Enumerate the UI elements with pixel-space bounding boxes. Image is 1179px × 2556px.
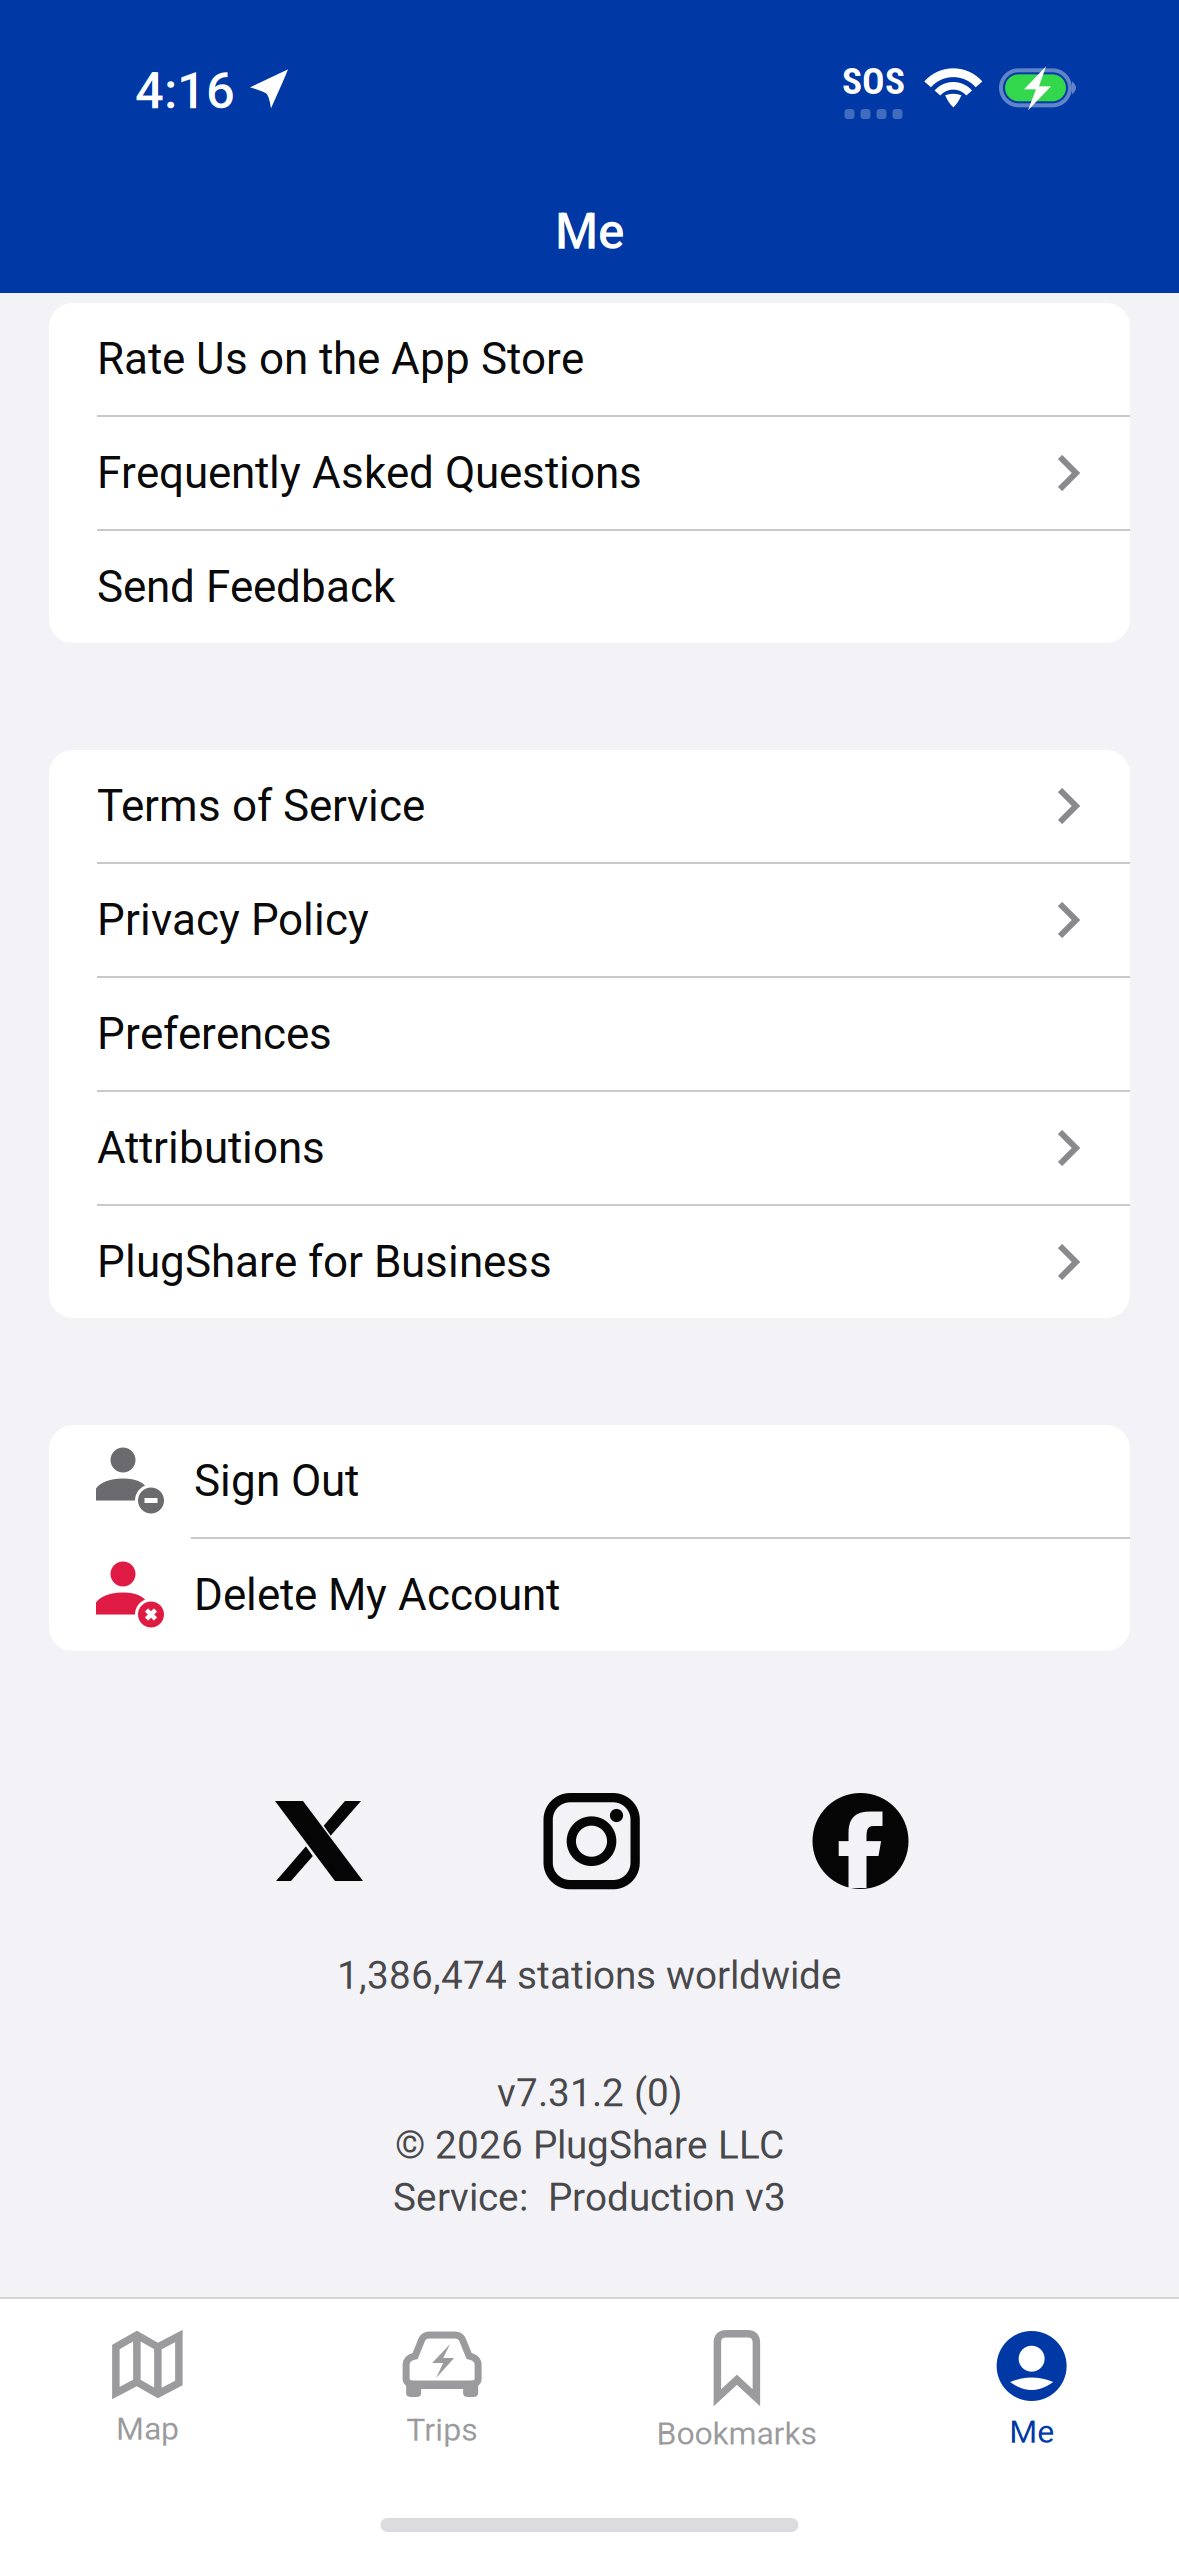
button[interactable]: Trips: [295, 2299, 590, 2459]
staticText: Delete My Account: [194, 1569, 560, 1621]
staticText: Terms of Service: [97, 780, 425, 832]
button[interactable]: Delete My Account: [49, 1539, 1130, 1651]
button[interactable]: Send Feedback: [49, 531, 1130, 643]
staticText: Service: Production v3: [393, 2175, 786, 2220]
staticText: Trips: [406, 2411, 478, 2448]
button[interactable]: Map: [0, 2299, 295, 2459]
button[interactable]: Me: [884, 2299, 1179, 2459]
button[interactable]: Frequently Asked Questions: [49, 417, 1130, 529]
staticText: Send Feedback: [97, 561, 395, 613]
staticText: 4:16: [135, 61, 235, 121]
staticText: Bookmarks: [656, 2415, 817, 2452]
button[interactable]: Privacy Policy: [49, 864, 1130, 976]
staticText: v7.31.2 (0): [497, 2070, 682, 2116]
staticText: Frequently Asked Questions: [97, 447, 642, 499]
staticText: Me: [1009, 2413, 1054, 2450]
button[interactable]: Rate Us on the App Store: [49, 303, 1130, 415]
button[interactable]: Facebook: [812, 1793, 908, 1889]
button[interactable]: Instagram: [543, 1793, 639, 1889]
staticText: Me: [555, 203, 624, 261]
button[interactable]: Preferences: [49, 978, 1130, 1090]
staticText: Privacy Policy: [97, 894, 369, 946]
staticText: 1,386,474 stations worldwide: [337, 1953, 842, 1998]
staticText: © 2026 PlugShare LLC: [395, 2123, 784, 2168]
staticText: Sign Out: [194, 1455, 359, 1507]
staticText: Rate Us on the App Store: [97, 333, 584, 385]
button[interactable]: Attributions: [49, 1092, 1130, 1204]
staticText: PlugShare for Business: [97, 1236, 552, 1288]
button[interactable]: X: [274, 1801, 363, 1881]
button[interactable]: PlugShare for Business: [49, 1206, 1130, 1318]
staticText: Preferences: [97, 1008, 332, 1060]
button[interactable]: Terms of Service: [49, 750, 1130, 862]
button[interactable]: Sign Out: [49, 1425, 1130, 1537]
staticText: Attributions: [97, 1122, 325, 1174]
staticText: Map: [116, 2410, 179, 2447]
staticText: SOS: [842, 59, 905, 103]
button[interactable]: Bookmarks: [589, 2299, 884, 2459]
